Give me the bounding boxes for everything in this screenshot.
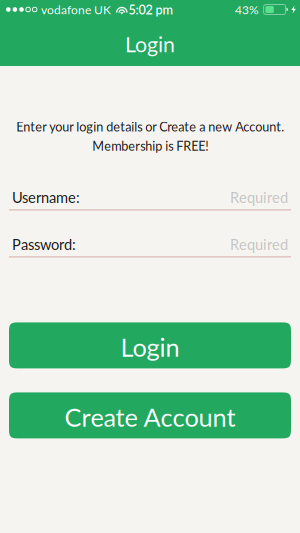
- staticText: Login: [125, 31, 175, 57]
- staticText: Username:: [12, 189, 80, 206]
- button[interactable]: Login: [0, 322, 300, 368]
- staticText: Required: [230, 189, 288, 206]
- staticText: 5:02 pm: [128, 2, 173, 17]
- staticText: vodafone UK: [41, 2, 111, 17]
- button[interactable]: Password:: [0, 232, 300, 257]
- staticText: Login: [120, 332, 179, 362]
- button[interactable]: Username:: [0, 185, 300, 210]
- staticText: 43%: [235, 2, 259, 17]
- staticText: Enter your login details or Create a new…: [16, 119, 284, 153]
- staticText: Create Account: [64, 402, 235, 432]
- button[interactable]: Create Account: [0, 392, 300, 438]
- staticText: Password:: [12, 236, 76, 253]
- staticText: Required: [230, 236, 288, 253]
